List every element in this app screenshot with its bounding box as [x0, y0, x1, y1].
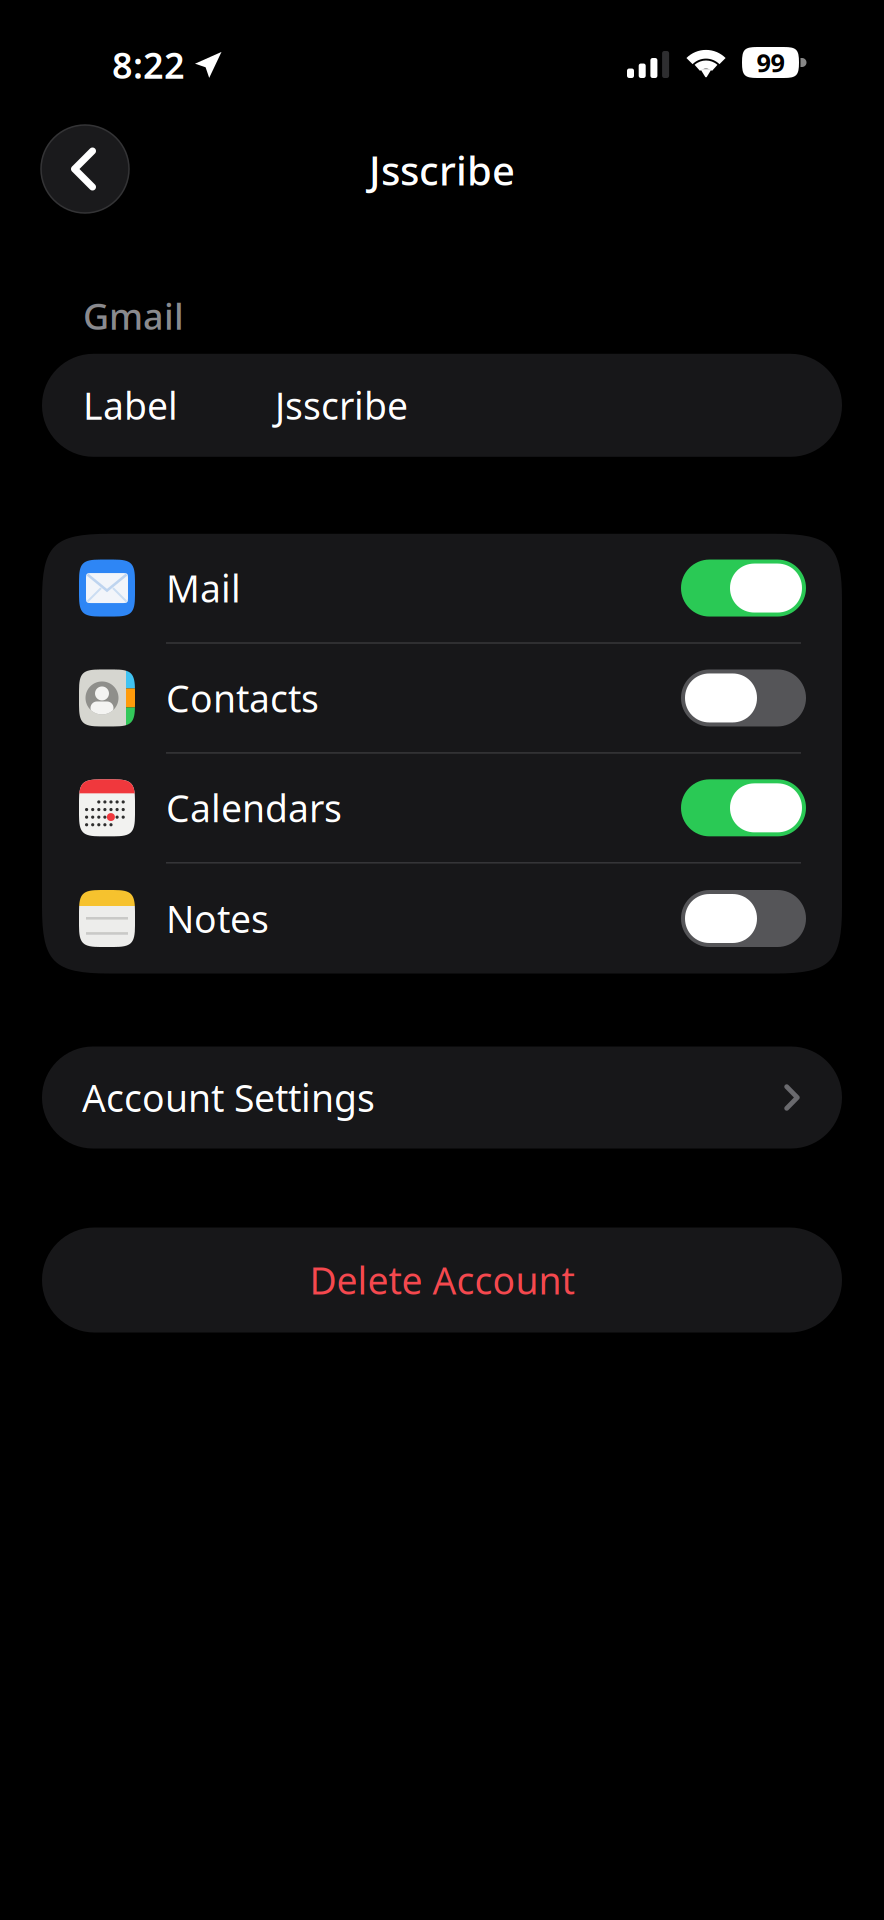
staticText: Label [83, 380, 178, 430]
staticText: Contacts [166, 673, 319, 723]
staticText: Mail [166, 563, 241, 613]
button[interactable]: Account Settings [0, 1046, 884, 1148]
button[interactable]: Delete Account [0, 1227, 884, 1332]
staticText: Jsscribe [275, 380, 408, 430]
staticText: 99 [756, 46, 784, 79]
staticText: Calendars [166, 783, 342, 833]
staticText: Notes [166, 894, 269, 943]
button[interactable]: Calendars [42, 754, 842, 862]
button[interactable]: Notes [42, 863, 842, 973]
staticText: Jsscribe [369, 143, 515, 196]
staticText: Gmail [83, 292, 184, 340]
staticText: 8:22 [112, 41, 185, 89]
button[interactable]: Mail [42, 534, 842, 642]
button[interactable]: Contacts [42, 644, 842, 752]
staticText: Account Settings [82, 1073, 375, 1122]
button[interactable]: Back [41, 125, 129, 213]
staticText: Delete Account [309, 1255, 574, 1305]
